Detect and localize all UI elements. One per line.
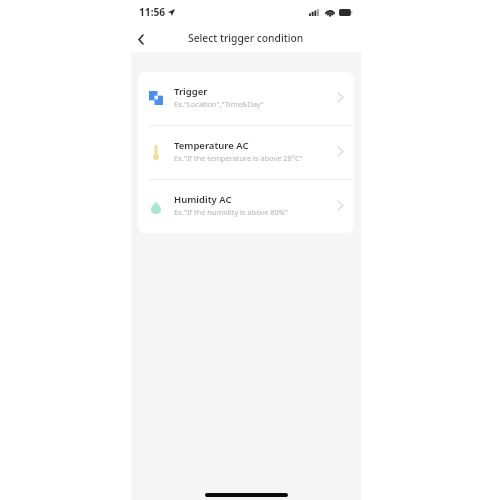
staticText: 11:56 xyxy=(139,5,166,19)
staticText: Trigger xyxy=(174,85,208,98)
button[interactable]: Humidity AC xyxy=(138,180,354,233)
button[interactable]: Temperature AC xyxy=(138,126,354,180)
button[interactable]: Trigger xyxy=(138,72,354,126)
staticText: Humidity AC xyxy=(174,193,232,206)
staticText: Select trigger condition xyxy=(188,31,304,45)
button[interactable]: Back xyxy=(132,30,150,48)
staticText: Ex."Location","Time&Day" xyxy=(174,99,264,109)
staticText: Ex."If the humidity is above 80%" xyxy=(174,207,288,217)
staticText: Ex."If the temperature is above 28°C" xyxy=(174,153,303,163)
staticText: Temperature AC xyxy=(174,139,249,152)
